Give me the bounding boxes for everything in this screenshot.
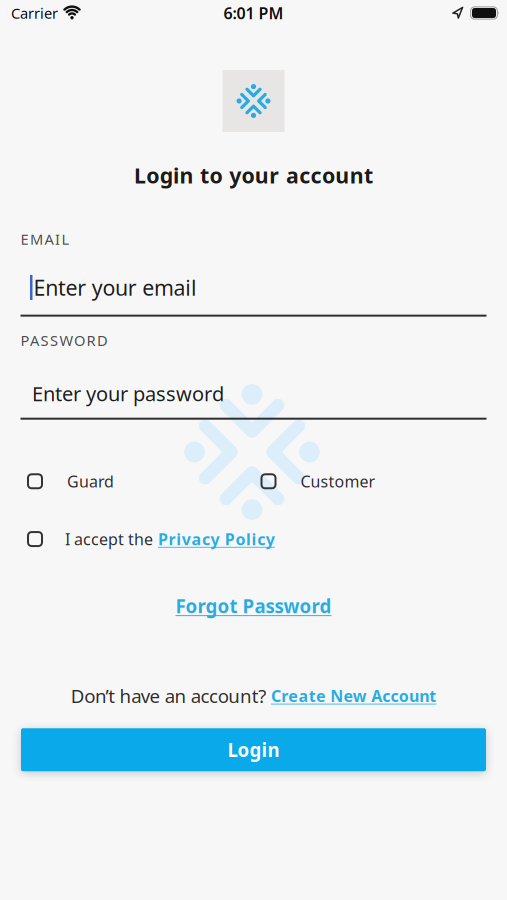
staticText: Enter your password	[32, 380, 224, 407]
staticText: I accept the	[65, 528, 153, 550]
staticText: Privacy Policy	[158, 528, 275, 550]
staticText: Customer	[300, 471, 375, 492]
staticText: Guard	[67, 471, 114, 492]
button[interactable]: Guard	[20, 471, 253, 492]
staticText: Login	[227, 737, 279, 762]
button[interactable]: Login	[21, 728, 486, 771]
button[interactable]: Customer	[253, 471, 486, 492]
button[interactable]: Enter your email	[20, 249, 486, 317]
staticText: 6:01 PM	[223, 2, 283, 24]
button[interactable]: I accept the	[20, 528, 153, 550]
staticText: Enter your email	[33, 273, 197, 302]
staticText: PASSWORD	[20, 331, 108, 350]
staticText: Don’t have an account?	[71, 683, 271, 708]
staticText: Create New Account	[271, 685, 436, 706]
button[interactable]: Enter your password	[20, 350, 486, 420]
staticText: Carrier	[11, 3, 58, 23]
staticText: Login to your account	[134, 161, 373, 189]
button[interactable]: Privacy Policy	[158, 528, 275, 550]
staticText: Forgot Password	[175, 594, 331, 618]
button[interactable]: Create New Account	[271, 685, 436, 706]
button[interactable]: Forgot Password	[175, 594, 331, 618]
staticText: EMAIL	[20, 229, 69, 249]
